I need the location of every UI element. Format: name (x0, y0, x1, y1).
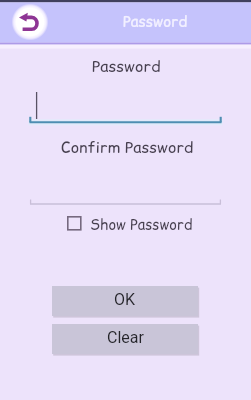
button[interactable]: OK (52, 286, 198, 316)
staticText: OK (114, 290, 136, 309)
button[interactable] (60, 211, 195, 235)
staticText: Password (92, 55, 161, 77)
staticText: Clear (107, 328, 144, 347)
button[interactable]: Clear (52, 324, 198, 354)
staticText: Show Password (90, 215, 193, 235)
button[interactable]: Back (10, 2, 50, 42)
staticText: Confirm Password (61, 136, 194, 158)
staticText: Password (123, 11, 188, 32)
